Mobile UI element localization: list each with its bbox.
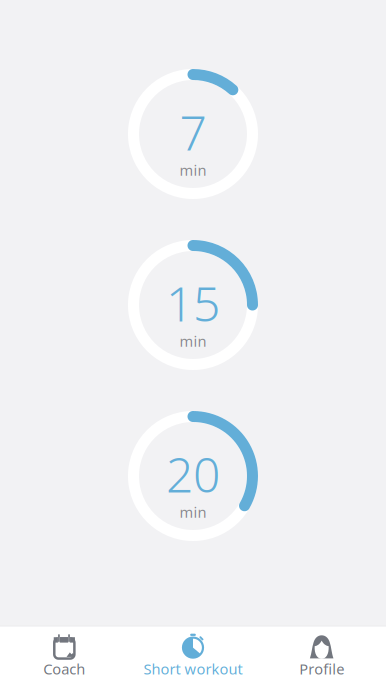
staticText: 15	[166, 271, 220, 335]
staticText: min	[179, 160, 206, 180]
button[interactable]: 7	[128, 69, 258, 199]
button[interactable]: 15	[128, 240, 258, 370]
staticText: 7	[179, 100, 206, 164]
staticText: min	[179, 331, 206, 351]
staticText: 20	[166, 442, 220, 506]
button[interactable]: 20	[128, 411, 258, 541]
staticText: Coach	[43, 659, 85, 678]
staticText: Short workout	[143, 659, 242, 678]
button[interactable]: Short workout	[129, 626, 257, 686]
button[interactable]: Coach	[0, 626, 129, 686]
staticText: min	[179, 502, 206, 522]
button[interactable]: Profile	[257, 626, 386, 686]
staticText: Profile	[299, 659, 344, 678]
